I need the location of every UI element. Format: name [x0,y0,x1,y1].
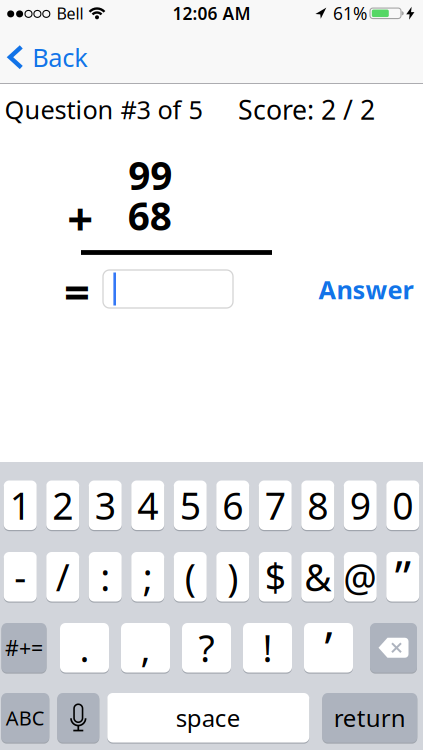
button[interactable]: #+= [1,623,46,672]
staticText: ) [227,552,238,602]
button[interactable]: . [60,623,109,672]
staticText: #+= [5,634,43,662]
button[interactable]: 8 [301,480,334,530]
staticText: ’ [324,618,332,678]
button[interactable]: / [46,552,79,601]
button[interactable]: ” [386,552,419,601]
button[interactable]: - [4,552,37,601]
button[interactable]: 6 [216,480,249,530]
staticText: 4 [137,480,158,530]
staticText: ( [185,552,196,602]
staticText: ; [143,552,153,602]
button[interactable]: 5 [174,480,207,530]
button[interactable]: , [121,623,170,672]
button[interactable]: @ [344,552,377,601]
button[interactable]: ( [174,552,207,601]
staticText: 2 [52,480,73,530]
button[interactable]: 7 [259,480,292,530]
staticText: : [100,552,110,602]
staticText: 0 [392,480,413,530]
button[interactable]: Answer [318,273,413,306]
button[interactable]: Dictate [57,693,99,742]
button[interactable]: ? [182,623,231,672]
staticText: 1 [10,480,31,530]
staticText: - [14,552,26,602]
staticText: 9 [350,480,371,530]
staticText: ! [262,623,272,673]
staticText: = [64,261,90,321]
staticText: space [176,702,241,734]
button[interactable]: Answer field [103,270,233,308]
button[interactable]: 2 [46,480,79,530]
staticText: 68 [128,190,172,241]
staticText: & [304,552,331,602]
staticText: 3 [95,480,116,530]
button[interactable]: 0 [386,480,419,530]
button[interactable]: 9 [344,480,377,530]
button[interactable]: ) [216,552,249,601]
button[interactable]: : [89,552,122,601]
button[interactable]: ABC [1,693,49,742]
staticText: 61% [333,2,367,25]
staticText: @ [343,552,377,602]
button[interactable]: ; [131,552,164,601]
button[interactable]: Delete [370,623,417,672]
staticText: / [56,552,70,602]
button[interactable]: Back [8,42,88,72]
staticText: ABC [6,704,45,731]
button[interactable]: space [107,693,309,742]
staticText: Back [32,40,88,74]
button[interactable]: $ [259,552,292,601]
staticText: . [79,623,89,673]
staticText: Answer [318,273,413,306]
button[interactable]: & [301,552,334,601]
staticText: $ [265,552,286,602]
staticText: 5 [180,480,201,530]
staticText: 99 [128,149,172,201]
button[interactable]: 4 [131,480,164,530]
button[interactable]: ! [243,623,292,672]
staticText: Score: 2 / 2 [238,92,375,127]
staticText: ” [395,547,411,607]
staticText: return [334,702,406,734]
staticText: ? [198,623,214,673]
staticText: 7 [265,480,286,530]
staticText: Question #3 of 5 [4,93,202,126]
staticText: 8 [307,480,328,530]
button[interactable]: ’ [304,623,353,672]
staticText: Bell [56,3,83,24]
staticText: + [67,188,93,248]
staticText: 12:06 AM [172,2,250,25]
staticText: 6 [222,480,243,530]
staticText: , [140,623,150,673]
button[interactable]: 1 [4,480,37,530]
button[interactable]: return [322,693,417,742]
button[interactable]: 3 [89,480,122,530]
